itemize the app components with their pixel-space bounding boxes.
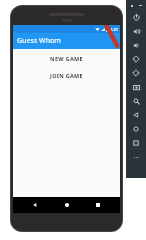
button[interactable]: More	[126, 150, 146, 164]
button[interactable]: Volume down	[126, 38, 146, 52]
button[interactable]: JOIN GAME	[46, 71, 87, 80]
staticText: Guess Whom	[17, 36, 62, 46]
staticText: 4:21	[110, 27, 118, 32]
button[interactable]: Zoom	[126, 94, 146, 108]
button[interactable]: Recent apps	[88, 197, 108, 213]
button[interactable]: Power	[126, 10, 146, 24]
button[interactable]: Back	[126, 108, 146, 122]
button[interactable]: Home	[57, 197, 77, 213]
button[interactable]: Overview	[126, 136, 146, 150]
button[interactable]: Minimize	[139, 4, 142, 7]
button[interactable]: Home	[126, 122, 146, 136]
button[interactable]: Volume up	[126, 24, 146, 38]
button[interactable]: Close	[130, 4, 133, 7]
button[interactable]: Take screenshot	[126, 80, 146, 94]
staticText: NEW GAME	[50, 55, 83, 62]
staticText: JOIN GAME	[50, 72, 83, 79]
button[interactable]: NEW GAME	[46, 54, 87, 63]
button[interactable]: Rotate left	[126, 52, 146, 66]
button[interactable]: Back	[25, 197, 45, 213]
button[interactable]: Rotate right	[126, 66, 146, 80]
